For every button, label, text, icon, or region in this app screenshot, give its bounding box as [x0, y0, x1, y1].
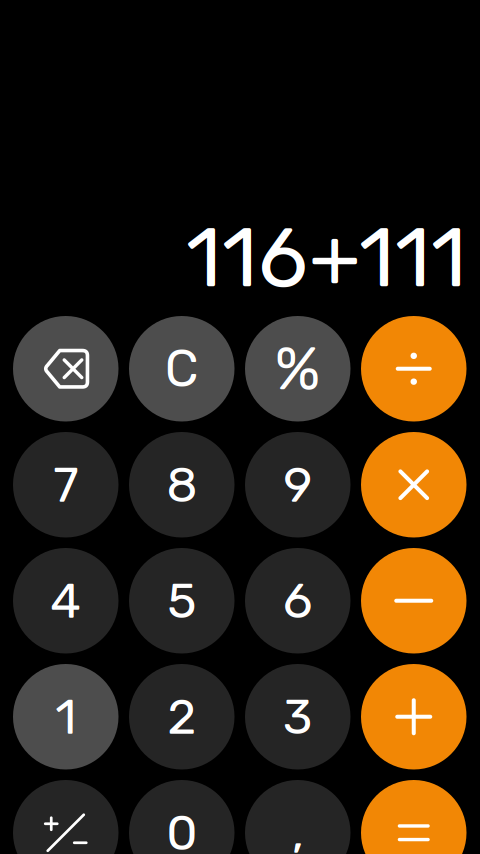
staticText: 7	[53, 455, 78, 514]
button[interactable]: ,	[245, 780, 350, 854]
button[interactable]: Equals	[361, 780, 466, 854]
button[interactable]: Add	[361, 664, 466, 769]
button[interactable]: 8	[129, 432, 234, 537]
staticText: ,	[292, 802, 304, 854]
staticText: 4	[50, 571, 81, 630]
button[interactable]: 4	[13, 548, 118, 653]
staticText: 6	[283, 571, 313, 630]
button[interactable]: 5	[129, 548, 234, 653]
staticText: %	[275, 333, 321, 404]
button[interactable]: Delete	[13, 316, 118, 421]
button[interactable]: 3	[245, 664, 350, 769]
button[interactable]: Toggle sign	[13, 780, 118, 854]
button[interactable]: C	[129, 316, 234, 421]
staticText: 9	[283, 455, 312, 514]
button[interactable]: %	[245, 316, 350, 421]
button[interactable]: Subtract	[361, 548, 466, 653]
button[interactable]: 2	[129, 664, 234, 769]
button[interactable]: Divide	[361, 316, 466, 421]
button[interactable]: Multiply	[361, 432, 466, 537]
button[interactable]: 7	[13, 432, 118, 537]
staticText: 0	[166, 803, 197, 854]
staticText: 116+111	[186, 209, 466, 307]
staticText: 3	[283, 687, 313, 746]
button[interactable]: 6	[245, 548, 350, 653]
staticText: C	[165, 339, 199, 399]
staticText: 2	[167, 687, 196, 746]
button[interactable]: 1	[13, 664, 118, 769]
button[interactable]: 0	[129, 780, 234, 854]
staticText: 5	[167, 571, 196, 630]
staticText: 1	[55, 687, 76, 746]
staticText: 8	[166, 455, 197, 514]
button[interactable]: 9	[245, 432, 350, 537]
